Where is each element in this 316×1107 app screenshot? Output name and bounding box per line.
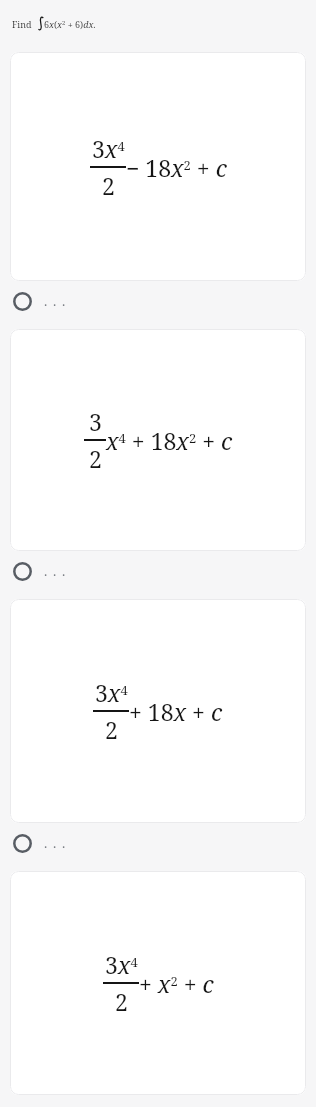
- button[interactable]: 3x4: [10, 599, 306, 823]
- staticText: 2: [115, 986, 128, 1017]
- staticText: . . .: [44, 834, 67, 852]
- button[interactable]: Select answer option: [0, 555, 316, 587]
- button[interactable]: 3x4: [10, 871, 306, 1095]
- staticText: 3: [89, 406, 102, 437]
- staticText: + 18x + c: [129, 696, 223, 727]
- button[interactable]: Select answer option: [0, 827, 316, 859]
- staticText: 2: [102, 170, 115, 201]
- staticText: + x2 + c: [139, 968, 214, 999]
- staticText: x4 + 18x2 + c: [106, 425, 233, 456]
- staticText: 3x4: [105, 949, 138, 980]
- button[interactable]: Select answer option: [0, 285, 316, 317]
- button[interactable]: 3x4: [10, 52, 306, 281]
- staticText: 6x(x2 + 6)dx.: [44, 18, 96, 30]
- staticText: Find: [12, 18, 32, 30]
- staticText: . . .: [44, 292, 67, 310]
- staticText: 3x4: [92, 133, 125, 164]
- staticText: 3x4: [95, 677, 128, 708]
- button[interactable]: 3: [10, 329, 306, 551]
- staticText: 2: [105, 714, 118, 745]
- staticText: . . .: [44, 562, 67, 580]
- staticText: 2: [89, 443, 102, 474]
- staticText: − 18x2 + c: [126, 152, 227, 183]
